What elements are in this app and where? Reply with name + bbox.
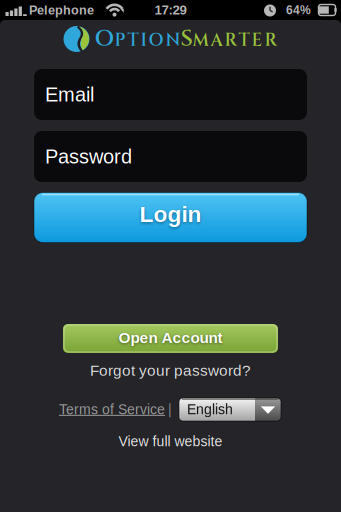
button[interactable]: View full website (118, 434, 222, 449)
button[interactable]: Language: English (179, 398, 281, 421)
staticText: | (168, 402, 172, 417)
button[interactable]: Terms of Service (59, 402, 165, 417)
staticText: Terms of Service (59, 402, 165, 417)
button[interactable]: Login (34, 192, 307, 242)
staticText: View full website (118, 434, 222, 449)
button[interactable]: Forgot your password? (90, 362, 251, 379)
staticText: O (94, 24, 114, 54)
staticText: Open Account (118, 329, 222, 346)
staticText: Forgot your password? (90, 362, 251, 379)
button[interactable]: Password (34, 131, 307, 182)
staticText: PTION (114, 29, 180, 52)
button[interactable]: Open Account (63, 324, 278, 353)
button[interactable]: Email (34, 69, 307, 120)
staticText: 64% (286, 3, 311, 17)
staticText: Email (45, 83, 94, 106)
staticText: S (180, 24, 192, 54)
staticText: MARTER (192, 29, 277, 52)
staticText: Pelephone (29, 3, 94, 17)
staticText: English (187, 402, 233, 417)
staticText: 17:29 (154, 3, 186, 17)
staticText: Password (45, 145, 132, 168)
staticText: Login (139, 201, 201, 227)
